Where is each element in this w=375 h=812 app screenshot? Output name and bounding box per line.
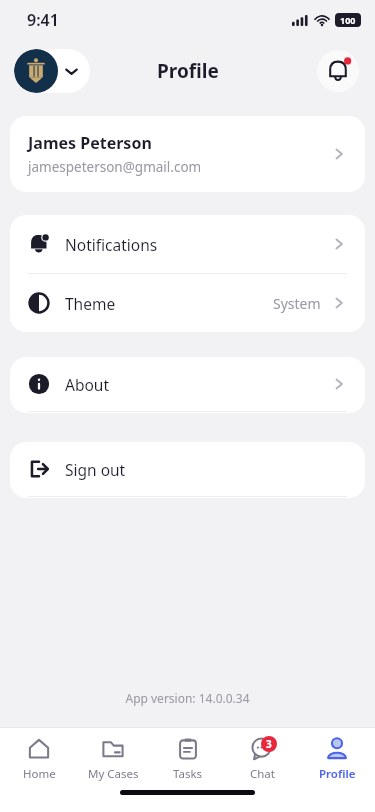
staticText: System: [273, 294, 321, 313]
staticText: 9:41: [27, 9, 59, 31]
button[interactable]: Notifications: [317, 50, 359, 92]
staticText: 3: [266, 737, 272, 751]
staticText: Home: [23, 766, 56, 782]
staticText: App version: 14.0.0.34: [0, 690, 375, 706]
button[interactable]: Profile: [301, 736, 373, 782]
button[interactable]: 3: [226, 736, 298, 782]
button[interactable]: Theme: [10, 274, 365, 332]
button[interactable]: About: [10, 357, 365, 411]
button[interactable]: Tasks: [152, 736, 224, 782]
staticText: jamespeterson@gmail.com: [28, 158, 202, 176]
staticText: Profile: [319, 766, 356, 782]
staticText: James Peterson: [28, 132, 152, 154]
button[interactable]: Home: [3, 736, 75, 782]
staticText: Sign out: [65, 459, 347, 480]
button[interactable]: Sign out: [10, 442, 365, 496]
staticText: My Cases: [88, 766, 139, 782]
button[interactable]: My Cases: [77, 736, 149, 782]
staticText: Tasks: [173, 766, 203, 782]
staticText: Notifications: [65, 234, 331, 255]
button[interactable]: James Peterson: [10, 116, 365, 192]
staticText: About: [65, 374, 331, 395]
staticText: Chat: [250, 766, 275, 782]
staticText: Profile: [157, 58, 219, 84]
staticText: 100: [340, 14, 356, 26]
button[interactable]: Switch organisation: [14, 49, 90, 93]
staticText: Theme: [65, 293, 273, 314]
button[interactable]: Notifications: [10, 215, 365, 273]
